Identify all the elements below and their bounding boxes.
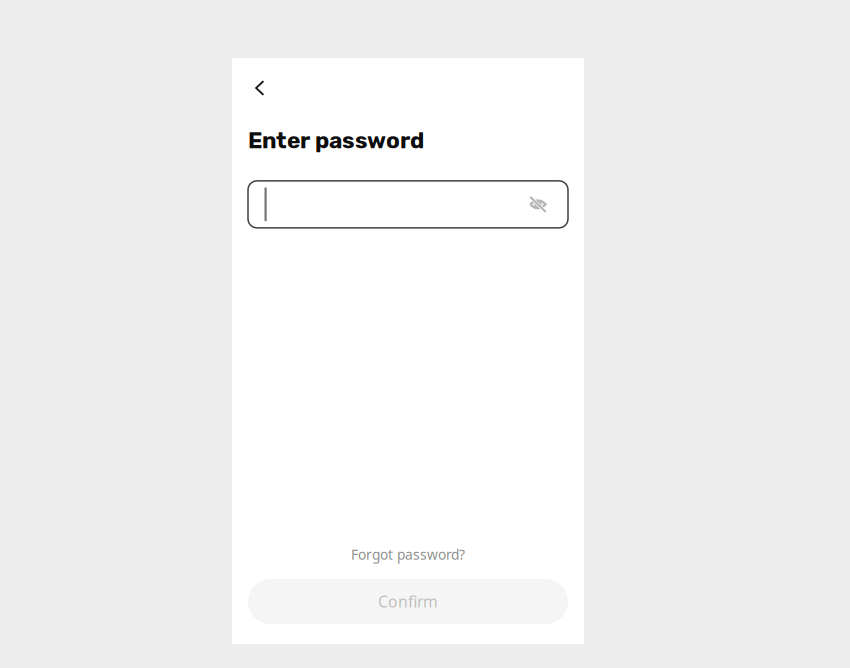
staticText: Enter password <box>248 127 424 154</box>
button[interactable]: Forgot password? <box>248 544 568 564</box>
button[interactable]: Show password <box>518 182 558 227</box>
staticText: Confirm <box>378 591 438 612</box>
button[interactable]: Back <box>246 66 290 110</box>
staticText: Forgot password? <box>351 545 465 564</box>
button[interactable]: Confirm <box>248 579 568 624</box>
